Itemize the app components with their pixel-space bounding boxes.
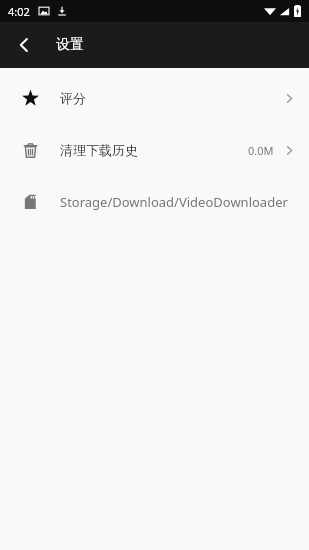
staticText: 0.0M [248,143,274,158]
staticText: 设置 [56,36,84,54]
staticText: 清理下载历史 [60,142,138,158]
button[interactable]: 评分 [0,72,309,124]
staticText: Storage/Download/VideoDownloader [60,193,288,211]
staticText: 评分 [60,90,86,106]
button[interactable]: 清理下载历史 [0,124,309,176]
staticText: 4:02 [8,4,30,19]
button[interactable]: Storage/Download/VideoDownloader [0,176,309,228]
button[interactable]: Back [0,22,48,68]
